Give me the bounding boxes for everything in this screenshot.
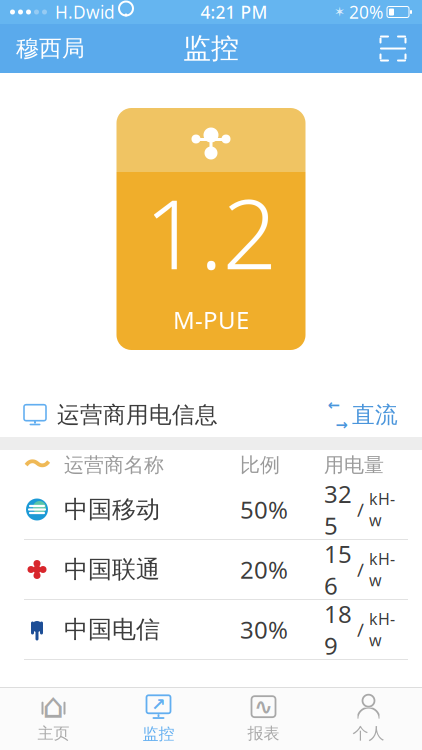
staticText: 比例: [240, 453, 280, 477]
button[interactable]: ↗: [106, 688, 211, 750]
staticText: 中国联通: [64, 555, 160, 584]
staticText: 直流: [352, 401, 398, 429]
button[interactable]: 中国联通: [0, 540, 422, 599]
staticText: /: [352, 617, 369, 642]
staticText: 1.2: [144, 168, 277, 296]
staticText: →: [335, 416, 347, 433]
staticText: kHw: [369, 548, 395, 591]
staticText: ✶: [334, 4, 345, 19]
staticText: 20%: [349, 0, 383, 23]
staticText: M-PUE: [173, 304, 249, 336]
staticText: 189: [324, 598, 352, 661]
staticText: ↗: [151, 694, 166, 714]
staticText: H.Dwid: [50, 0, 115, 23]
button[interactable]: ⌂: [1, 688, 106, 750]
button[interactable]: ←: [329, 395, 398, 435]
staticText: 穆西局: [16, 35, 85, 62]
staticText: ∿: [254, 694, 273, 719]
button[interactable]: 个人: [316, 688, 421, 750]
staticText: /: [352, 557, 369, 582]
staticText: kHw: [369, 488, 395, 531]
staticText: 运营商用电信息: [57, 401, 218, 429]
button[interactable]: 穆西局: [0, 24, 101, 73]
staticText: 中国电信: [64, 615, 160, 644]
staticText: 报表: [247, 724, 279, 743]
staticText: ←: [327, 397, 339, 413]
staticText: 用电量: [324, 453, 384, 477]
button[interactable]: 中国移动: [0, 480, 422, 539]
staticText: 个人: [352, 724, 384, 743]
button[interactable]: 中国电信: [0, 600, 422, 659]
staticText: 156: [324, 538, 352, 601]
staticText: 325: [324, 478, 352, 541]
staticText: 中国移动: [64, 495, 160, 524]
staticText: 30%: [240, 614, 288, 645]
staticText: 〜: [23, 449, 50, 481]
staticText: kHw: [369, 608, 395, 651]
staticText: 50%: [240, 494, 288, 525]
button[interactable]: Scan: [364, 24, 422, 73]
staticText: 主页: [37, 724, 69, 743]
staticText: 监控: [183, 31, 239, 66]
staticText: 4:21 PM: [200, 0, 267, 23]
staticText: 运营商名称: [64, 453, 164, 477]
staticText: ⌂: [42, 686, 64, 725]
staticText: /: [352, 497, 369, 522]
staticText: 监控: [142, 724, 174, 744]
staticText: 20%: [240, 554, 288, 585]
button[interactable]: ∿: [211, 688, 316, 750]
